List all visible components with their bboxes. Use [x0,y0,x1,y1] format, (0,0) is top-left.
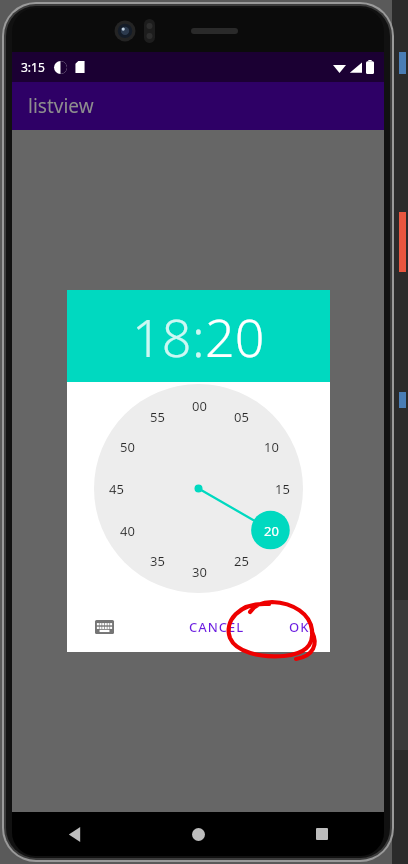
staticText: 55 [150,408,165,426]
button[interactable]: Switch to text input mode [89,612,119,642]
button[interactable]: Home [136,812,260,856]
button[interactable]: OK [277,611,322,643]
button[interactable]: 00 [184,391,214,421]
staticText: 25 [234,552,249,570]
button[interactable]: 55 [142,402,172,432]
button[interactable]: 50 [112,432,142,462]
button[interactable]: 18 [67,290,330,382]
staticText: 10 [264,438,279,456]
staticText: 30 [192,563,207,581]
staticText: 05 [234,408,249,426]
button[interactable]: 10 [256,432,286,462]
button[interactable]: CANCEL [177,611,257,643]
button[interactable]: 05 [226,402,256,432]
button[interactable]: 15 [267,474,297,504]
staticText: OK [289,618,310,636]
staticText: 15 [275,480,290,498]
staticText: 20 [264,522,279,540]
button[interactable]: 30 [184,557,214,587]
button[interactable]: Recent apps [260,812,384,856]
button[interactable]: 35 [142,546,172,576]
button[interactable]: Back [12,812,136,856]
staticText: 20 [205,301,265,372]
staticText: 00 [192,397,207,415]
button[interactable]: 40 [112,516,142,546]
staticText: : [192,301,205,372]
staticText: 3:15 [21,59,45,75]
button[interactable]: 25 [226,546,256,576]
staticText: 45 [109,480,124,498]
staticText: listview [28,93,94,119]
staticText: CANCEL [189,618,245,636]
staticText: 18 [132,301,192,372]
button[interactable]: 20 [256,516,286,546]
staticText: 50 [120,438,135,456]
staticText: 40 [120,522,135,540]
button[interactable]: 45 [101,474,131,504]
staticText: 35 [150,552,165,570]
